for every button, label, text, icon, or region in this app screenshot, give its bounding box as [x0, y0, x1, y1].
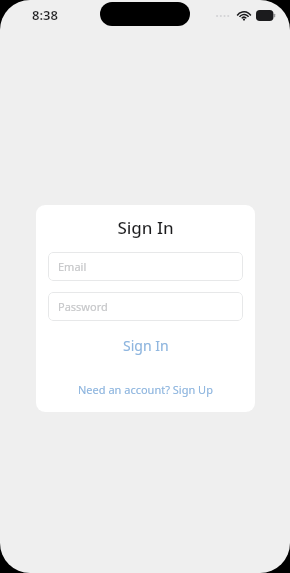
button[interactable]: Sign In — [36, 334, 255, 356]
staticText: Email — [58, 259, 87, 274]
staticText: Need an account? Sign Up — [78, 382, 213, 397]
button[interactable]: Password — [48, 292, 243, 321]
other: Wi-Fi — [237, 10, 251, 21]
other: Battery — [256, 10, 276, 21]
staticText: Sign In — [123, 336, 169, 355]
other: Cellular signal — [216, 11, 232, 21]
staticText: Sign In — [36, 216, 255, 239]
button[interactable]: Need an account? Sign Up — [36, 380, 255, 398]
staticText: Password — [58, 299, 108, 314]
staticText: 8:38 — [32, 6, 58, 24]
button[interactable]: Email — [48, 252, 243, 281]
